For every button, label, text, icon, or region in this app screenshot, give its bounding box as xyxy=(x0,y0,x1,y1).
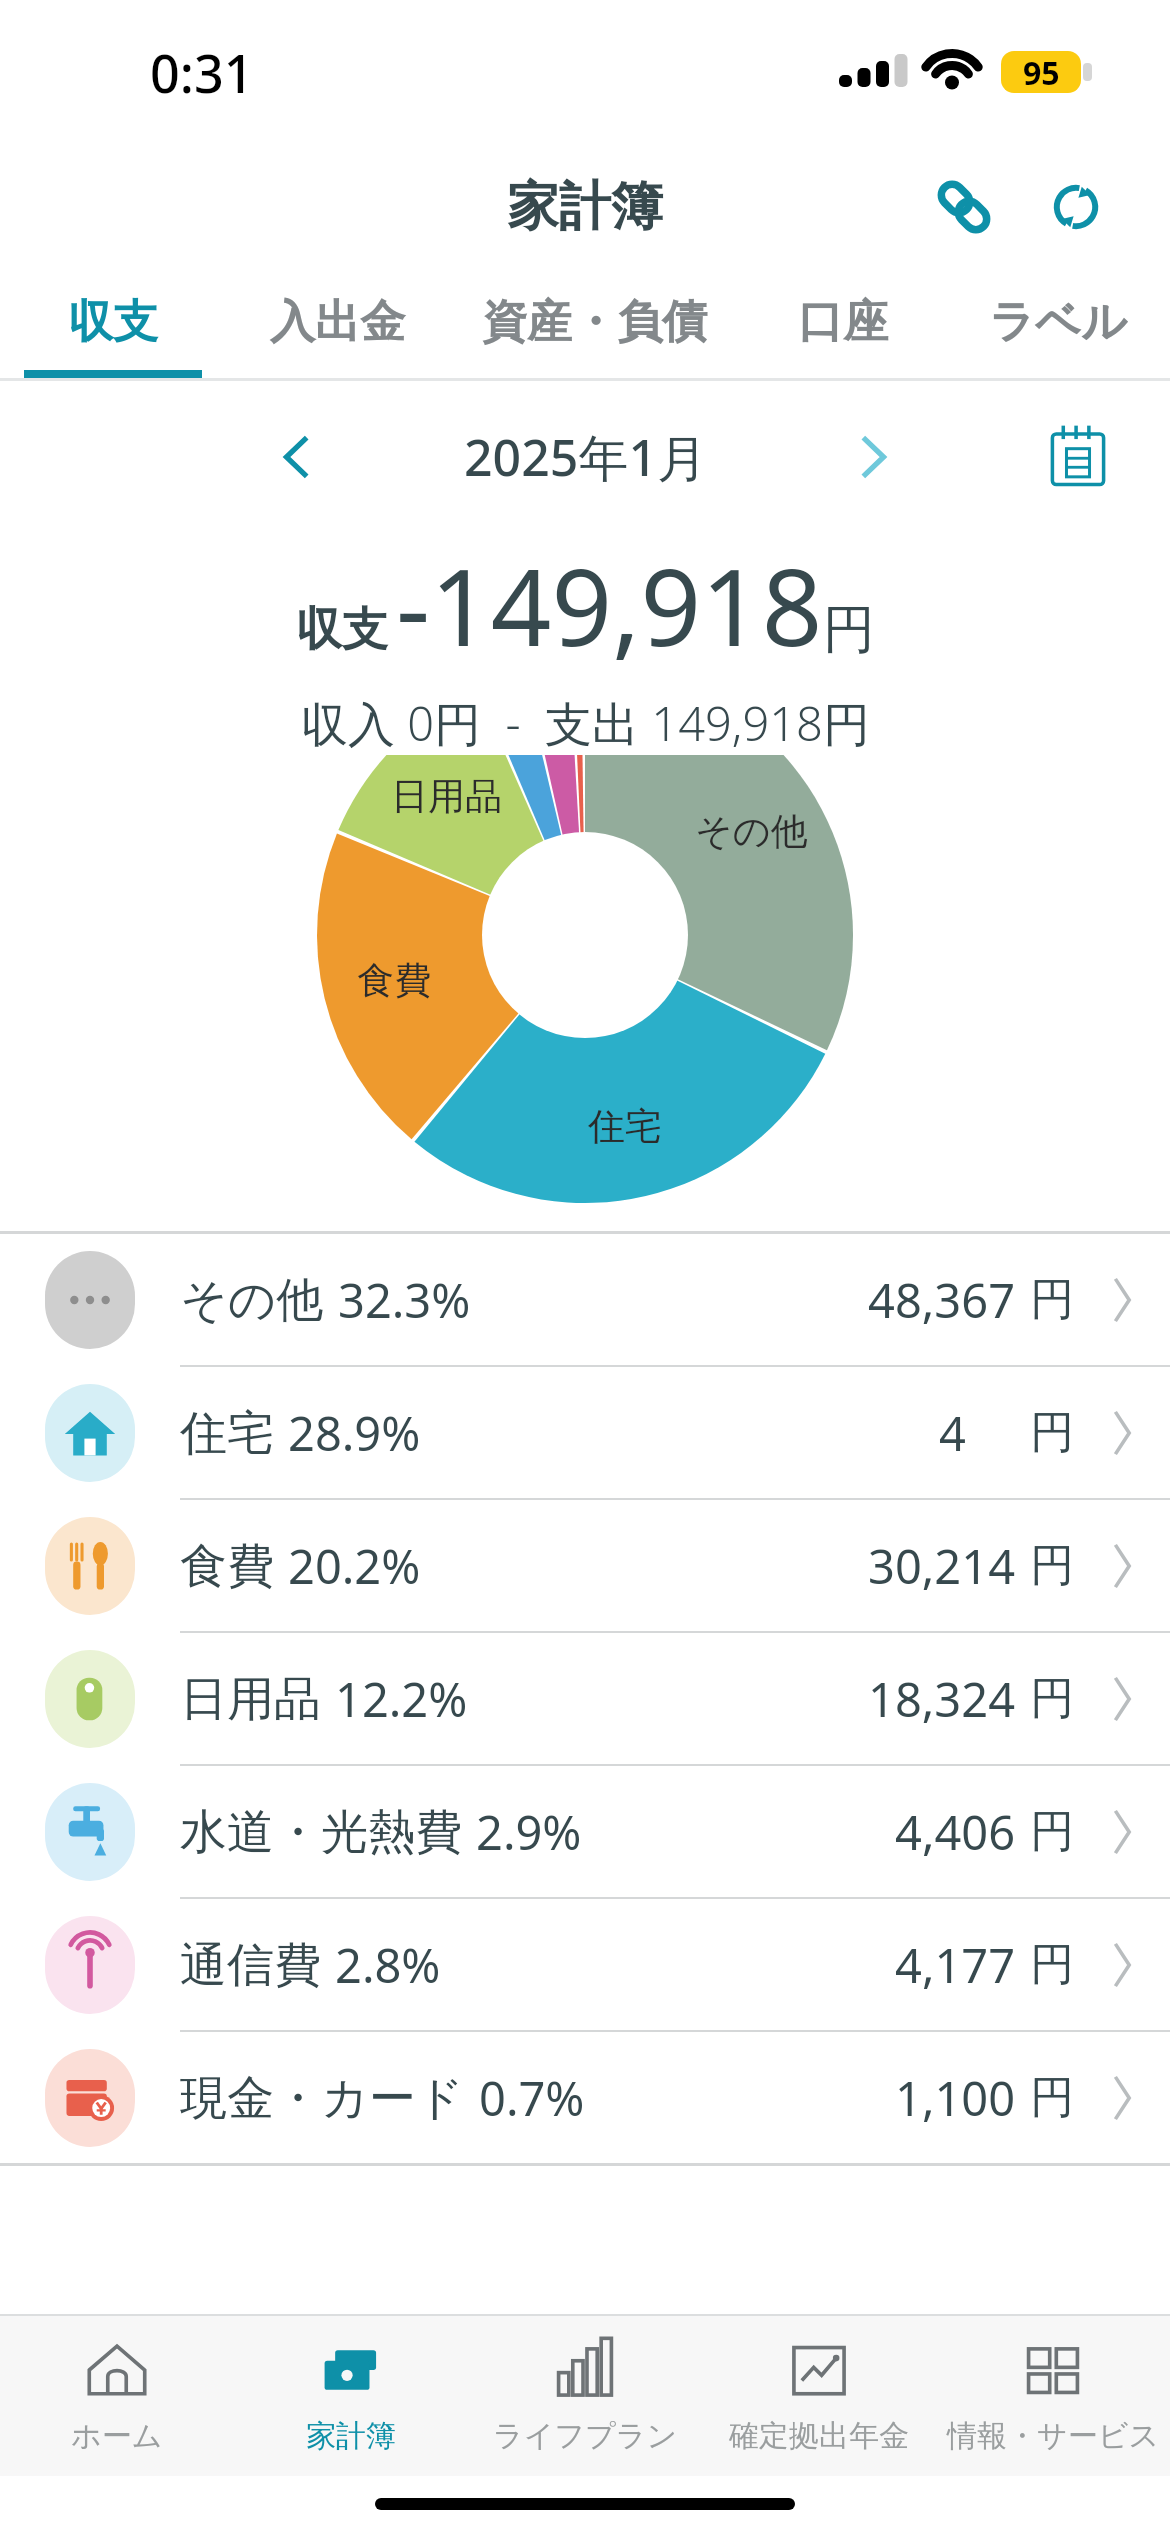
button[interactable]: ライフプラン xyxy=(468,2316,702,2476)
staticText: -149,918 xyxy=(396,533,823,677)
staticText: 円 xyxy=(823,597,875,663)
staticText: 4,177 xyxy=(895,1933,1016,1997)
staticText: 2.8% xyxy=(335,1933,441,1997)
staticText: 4,406 xyxy=(895,1800,1016,1864)
button[interactable]: Link accounts xyxy=(908,151,1020,263)
staticText: 現金・カード xyxy=(180,2069,465,2128)
button[interactable]: その他 xyxy=(0,1234,1170,1365)
button[interactable]: ホーム xyxy=(0,2316,234,2476)
button[interactable]: 家計簿 xyxy=(234,2316,468,2476)
staticText: 収支 xyxy=(296,601,388,659)
button[interactable]: 現金・カード xyxy=(0,2032,1170,2163)
staticText: 円 xyxy=(1030,1405,1074,1460)
staticText: 円 xyxy=(1030,1804,1074,1859)
staticText: 円 xyxy=(1030,1272,1074,1327)
staticText: ライフプラン xyxy=(493,2417,678,2455)
button[interactable]: Next month xyxy=(821,405,925,509)
button[interactable]: 通信費 xyxy=(0,1899,1170,2030)
button[interactable]: Change period xyxy=(1026,405,1130,509)
staticText: 28.9% xyxy=(288,1401,421,1465)
staticText: 住宅 xyxy=(180,1404,274,1463)
button[interactable]: Sync xyxy=(1020,151,1132,263)
staticText: 2025年1月 xyxy=(464,423,707,491)
staticText: 確定拠出年金 xyxy=(729,2417,909,2455)
staticText: 0:31 xyxy=(150,37,254,108)
staticText: 日用品 xyxy=(180,1670,321,1729)
staticText: 12.2% xyxy=(335,1667,468,1731)
staticText: 水道・光熱費 xyxy=(180,1803,462,1862)
button[interactable]: 収支 xyxy=(0,266,225,378)
staticText: 2.9% xyxy=(476,1800,582,1864)
staticText: 家計簿 xyxy=(306,2417,396,2455)
button[interactable]: 入出金 xyxy=(225,266,449,378)
staticText: 通信費 xyxy=(180,1936,321,1995)
button[interactable]: 情報・サービス xyxy=(936,2316,1170,2476)
button[interactable]: 食費 xyxy=(0,1500,1170,1631)
button[interactable]: ラベル xyxy=(946,266,1170,378)
staticText: 入出金 xyxy=(270,294,405,351)
staticText: 収支 xyxy=(68,294,158,351)
staticText: 資産・負債 xyxy=(482,294,707,351)
staticText: 4 xyxy=(939,1401,966,1465)
staticText: 円 xyxy=(1030,1671,1074,1726)
staticText: 収入 0円 - 支出 149,918円 xyxy=(301,691,870,755)
staticText: その他 xyxy=(180,1271,324,1330)
staticText: 48,367 xyxy=(868,1268,1016,1332)
staticText: 家計簿 xyxy=(507,174,663,240)
staticText: 情報・サービス xyxy=(947,2417,1160,2455)
staticText: 20.2% xyxy=(288,1534,421,1598)
staticText: 食費 xyxy=(180,1537,274,1596)
button[interactable]: 日用品 xyxy=(0,1633,1170,1764)
button[interactable]: 水道・光熱費 xyxy=(0,1766,1170,1897)
staticText: 18,324 xyxy=(868,1667,1016,1731)
staticText: 32.3% xyxy=(338,1268,471,1332)
staticText: ラベル xyxy=(989,294,1128,351)
staticText: 円 xyxy=(1030,2070,1074,2125)
button[interactable]: 口座 xyxy=(740,266,946,378)
staticText: 0.7% xyxy=(479,2066,585,2130)
staticText: 30,214 xyxy=(868,1534,1016,1598)
staticText: 円 xyxy=(1030,1538,1074,1593)
staticText: 円 xyxy=(1030,1937,1074,1992)
button[interactable]: 資産・負債 xyxy=(449,266,740,378)
button[interactable]: 確定拠出年金 xyxy=(702,2316,936,2476)
staticText: ホーム xyxy=(71,2417,163,2455)
staticText: 口座 xyxy=(798,294,888,351)
button[interactable]: 住宅 xyxy=(0,1367,1170,1498)
button[interactable]: Previous month xyxy=(245,405,349,509)
staticText: 1,100 xyxy=(895,2066,1016,2130)
staticText: 95 xyxy=(1023,51,1060,93)
